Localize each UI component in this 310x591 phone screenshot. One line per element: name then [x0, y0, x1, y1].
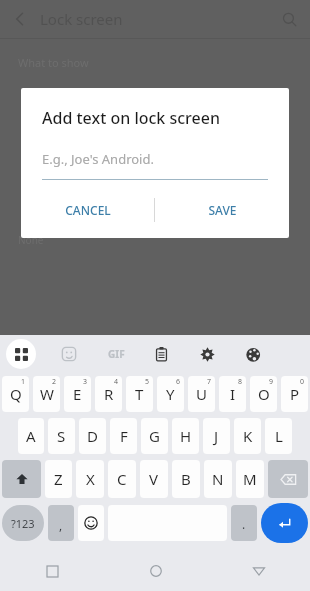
staticText: Y — [166, 384, 175, 404]
button[interactable]: Home — [104, 551, 207, 591]
staticText: . — [242, 516, 246, 532]
button[interactable]: Recent apps — [0, 551, 104, 591]
button[interactable]: , — [48, 505, 74, 541]
button[interactable]: Back — [207, 551, 310, 591]
staticText: None — [18, 233, 44, 247]
staticText: L — [275, 426, 283, 446]
staticText: 1 — [21, 377, 26, 387]
button[interactable]: Themes — [238, 339, 268, 369]
staticText: C — [117, 469, 127, 489]
staticText: 4 — [114, 377, 119, 387]
staticText: T — [135, 384, 144, 404]
button[interactable]: O — [250, 376, 277, 412]
button[interactable]: Settings — [192, 339, 222, 369]
staticText: W — [40, 384, 54, 404]
button[interactable]: Enter — [261, 503, 308, 543]
staticText: X — [86, 469, 95, 489]
button[interactable]: B — [172, 460, 200, 498]
button[interactable]: J — [203, 418, 230, 454]
staticText: E — [73, 384, 82, 404]
staticText: Lock screen — [40, 9, 123, 29]
staticText: GIF — [108, 347, 125, 361]
staticText: F — [120, 426, 128, 446]
button[interactable]: Keyboard modes — [6, 339, 36, 369]
button[interactable]: Stickers — [54, 339, 84, 369]
button[interactable]: N — [204, 460, 232, 498]
staticText: R — [104, 384, 114, 404]
staticText: 5 — [145, 377, 150, 387]
staticText: , — [59, 517, 63, 533]
staticText: SAVE — [208, 202, 237, 218]
button[interactable]: Y — [157, 376, 184, 412]
staticText: J — [214, 426, 219, 446]
button[interactable]: Backspace — [268, 460, 308, 498]
staticText: D — [87, 426, 98, 446]
staticText: 2 — [52, 377, 57, 387]
staticText: O — [258, 384, 270, 404]
button[interactable]: Shift — [2, 460, 41, 498]
button[interactable]: ?123 — [2, 505, 44, 541]
button[interactable]: K — [234, 418, 261, 454]
button[interactable]: Emoji — [78, 505, 104, 541]
staticText: 6 — [176, 377, 181, 387]
button[interactable]: E — [64, 376, 91, 412]
button[interactable]: H — [172, 418, 199, 454]
button[interactable]: T — [126, 376, 153, 412]
staticText: 9 — [269, 377, 274, 387]
button[interactable]: GIF — [100, 338, 132, 370]
staticText: S — [57, 426, 66, 446]
button[interactable]: U — [188, 376, 215, 412]
staticText: What to show — [18, 55, 89, 70]
button[interactable]: G — [141, 418, 168, 454]
button[interactable]: S — [48, 418, 75, 454]
button[interactable]: X — [76, 460, 104, 498]
staticText: E.g., Joe's Android. — [42, 150, 154, 168]
staticText: Add text on lock screen — [42, 107, 220, 129]
staticText: 3 — [83, 377, 88, 387]
staticText: ?123 — [11, 516, 35, 531]
staticText: 0 — [300, 377, 305, 387]
staticText: M — [243, 469, 257, 489]
button[interactable]: Clipboard — [146, 339, 176, 369]
staticText: A — [26, 426, 36, 446]
button[interactable]: Z — [45, 460, 72, 498]
staticText: U — [196, 384, 207, 404]
button[interactable]: C — [108, 460, 136, 498]
staticText: H — [180, 426, 192, 446]
staticText: V — [149, 469, 159, 489]
button[interactable]: W — [33, 376, 60, 412]
staticText: I — [230, 384, 236, 404]
button[interactable]: R — [95, 376, 122, 412]
button[interactable]: P — [281, 376, 308, 412]
button[interactable]: . — [231, 505, 257, 541]
staticText: G — [149, 426, 160, 446]
button[interactable]: L — [265, 418, 292, 454]
staticText: N — [212, 469, 224, 489]
button[interactable]: A — [18, 418, 44, 454]
staticText: 7 — [207, 377, 212, 387]
staticText: CANCEL — [65, 202, 111, 218]
staticText: B — [181, 469, 191, 489]
staticText: 8 — [238, 377, 243, 387]
staticText: P — [290, 384, 300, 404]
staticText: Z — [54, 469, 63, 489]
button[interactable]: Q — [2, 376, 29, 412]
staticText: K — [243, 426, 253, 446]
button[interactable]: D — [79, 418, 106, 454]
staticText: Q — [10, 384, 22, 404]
button[interactable]: I — [219, 376, 246, 412]
button[interactable]: M — [236, 460, 264, 498]
button[interactable]: SAVE — [155, 192, 289, 228]
button[interactable]: V — [140, 460, 168, 498]
button[interactable]: F — [110, 418, 137, 454]
button[interactable]: CANCEL — [21, 192, 154, 228]
